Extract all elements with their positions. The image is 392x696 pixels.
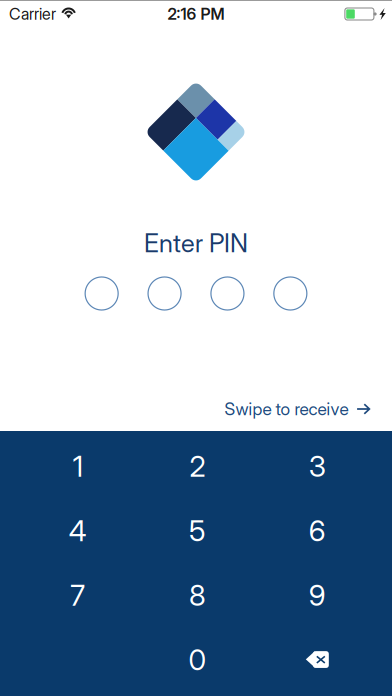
- button[interactable]: 9: [257, 563, 377, 627]
- button[interactable]: 4: [18, 498, 138, 563]
- staticText: 4: [69, 513, 87, 548]
- staticText: 3: [309, 449, 326, 484]
- staticText: Carrier: [9, 4, 56, 24]
- button[interactable]: 3: [257, 434, 377, 498]
- staticText: 9: [309, 578, 326, 613]
- button[interactable]: 6: [257, 498, 377, 563]
- button[interactable]: 8: [138, 563, 257, 627]
- staticText: 0: [188, 642, 206, 677]
- button[interactable]: Swipe to receive: [225, 399, 370, 419]
- staticText: 5: [189, 513, 206, 548]
- button[interactable]: Delete: [257, 627, 377, 692]
- button[interactable]: 1: [18, 434, 138, 498]
- staticText: Swipe to receive: [225, 398, 349, 419]
- staticText: 1: [73, 449, 83, 484]
- staticText: 7: [70, 578, 85, 613]
- staticText: 2:16 PM: [167, 4, 224, 24]
- button[interactable]: 0: [138, 627, 257, 692]
- button[interactable]: 5: [138, 498, 257, 563]
- staticText: 8: [189, 578, 206, 613]
- button[interactable]: 2: [138, 434, 257, 498]
- staticText: 2: [189, 449, 205, 484]
- staticText: Enter PIN: [144, 228, 248, 258]
- button[interactable]: 7: [18, 563, 138, 627]
- staticText: 6: [309, 513, 326, 548]
